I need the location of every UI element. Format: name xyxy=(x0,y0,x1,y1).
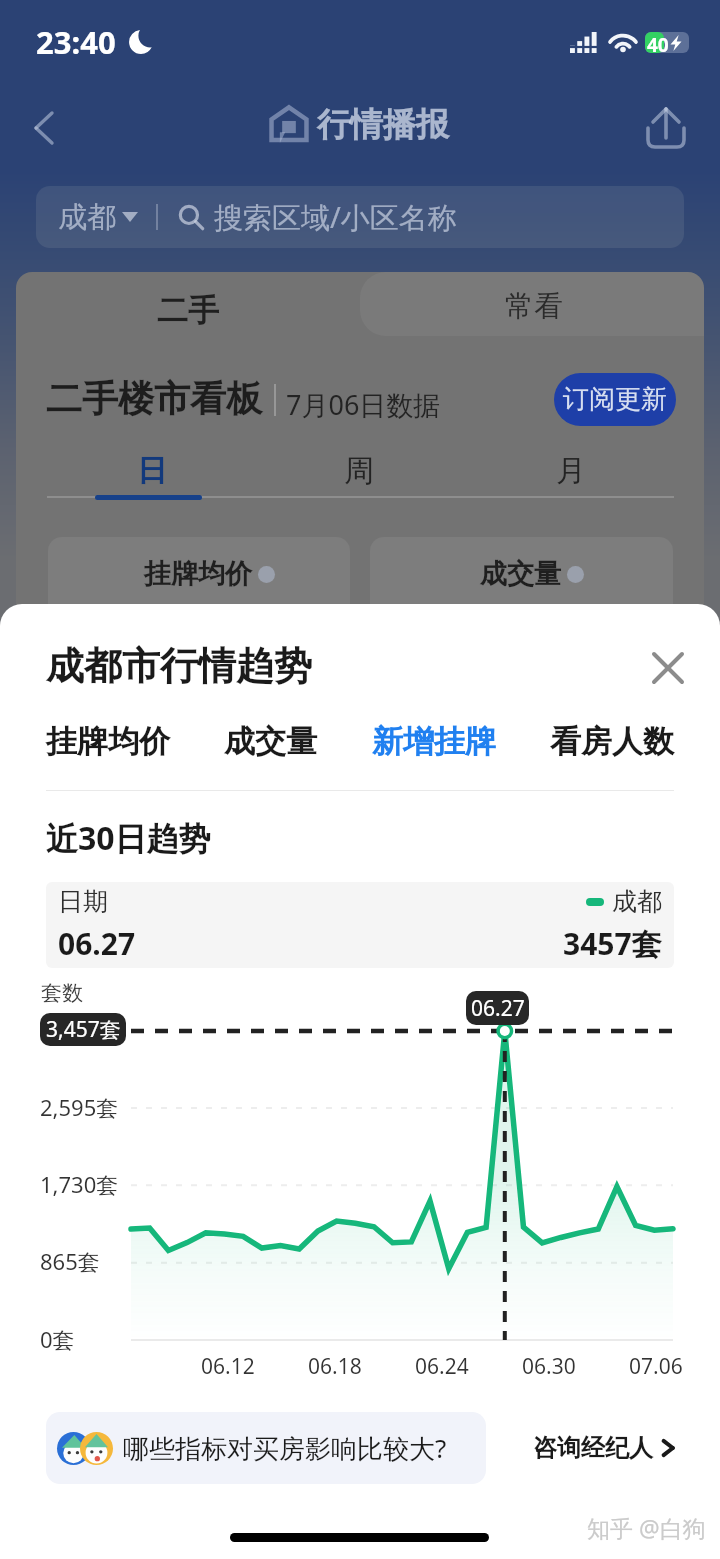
staticText: 1,730套 xyxy=(40,1169,119,1199)
staticText: 咨询经纪人 xyxy=(533,1433,653,1463)
button[interactable] xyxy=(46,1412,486,1484)
staticText: 06.30 xyxy=(522,1352,576,1381)
staticText: 哪些指标对买房影响比较大? xyxy=(123,1430,447,1466)
staticText: 成交量 xyxy=(224,722,317,761)
staticText: 二手楼市看板 xyxy=(46,376,262,421)
button[interactable]: 新增挂牌 xyxy=(372,722,496,761)
staticText: 3457套 xyxy=(563,923,662,964)
staticText: 二手 xyxy=(157,291,219,330)
staticText: 06.18 xyxy=(308,1352,362,1381)
staticText: 865套 xyxy=(40,1246,100,1276)
staticText: 知乎 @白狗 xyxy=(587,1512,706,1543)
button[interactable]: 挂牌均价 xyxy=(46,722,170,761)
staticText: 近30日趋势 xyxy=(46,816,211,860)
button[interactable]: Share xyxy=(642,98,690,146)
button[interactable]: Back xyxy=(22,92,68,138)
staticText: 07.06 xyxy=(629,1352,683,1381)
staticText: 套数 xyxy=(41,980,83,1006)
button[interactable]: 成交量 xyxy=(224,722,317,761)
staticText: 行情播报 xyxy=(317,104,449,146)
staticText: 新增挂牌 xyxy=(372,722,496,761)
staticText: 月 xyxy=(556,452,586,490)
staticText: 06.27 xyxy=(471,994,525,1023)
staticText: 看房人数 xyxy=(550,722,674,761)
staticText: 23:40 xyxy=(36,21,116,63)
staticText: 挂牌均价 xyxy=(46,722,170,761)
staticText: 2,595套 xyxy=(40,1092,119,1122)
staticText: 成交量 xyxy=(480,557,561,591)
staticText: 06.12 xyxy=(201,1352,255,1381)
staticText: 3,457套 xyxy=(46,1015,121,1044)
button[interactable]: 看房人数 xyxy=(550,722,674,761)
button[interactable]: Close xyxy=(640,640,696,696)
staticText: 常看 xyxy=(505,288,563,325)
staticText: 7月06日数据 xyxy=(286,386,441,423)
staticText: 06.24 xyxy=(415,1352,469,1381)
staticText: 成都 xyxy=(612,886,662,917)
staticText: 搜索区域/小区名称 xyxy=(214,197,457,237)
staticText: 成都 xyxy=(58,199,116,236)
staticText: 周 xyxy=(344,452,374,490)
staticText: 日期 xyxy=(58,886,108,917)
staticText: 0套 xyxy=(40,1324,75,1354)
staticText: 日 xyxy=(137,452,167,490)
button[interactable]: 咨询经纪人 xyxy=(533,1433,679,1463)
staticText: 挂牌均价 xyxy=(144,557,252,591)
staticText: 40 xyxy=(647,32,669,53)
staticText: 订阅更新 xyxy=(563,383,667,416)
staticText: 成都市行情趋势 xyxy=(46,642,312,690)
staticText: 06.27 xyxy=(58,923,136,964)
